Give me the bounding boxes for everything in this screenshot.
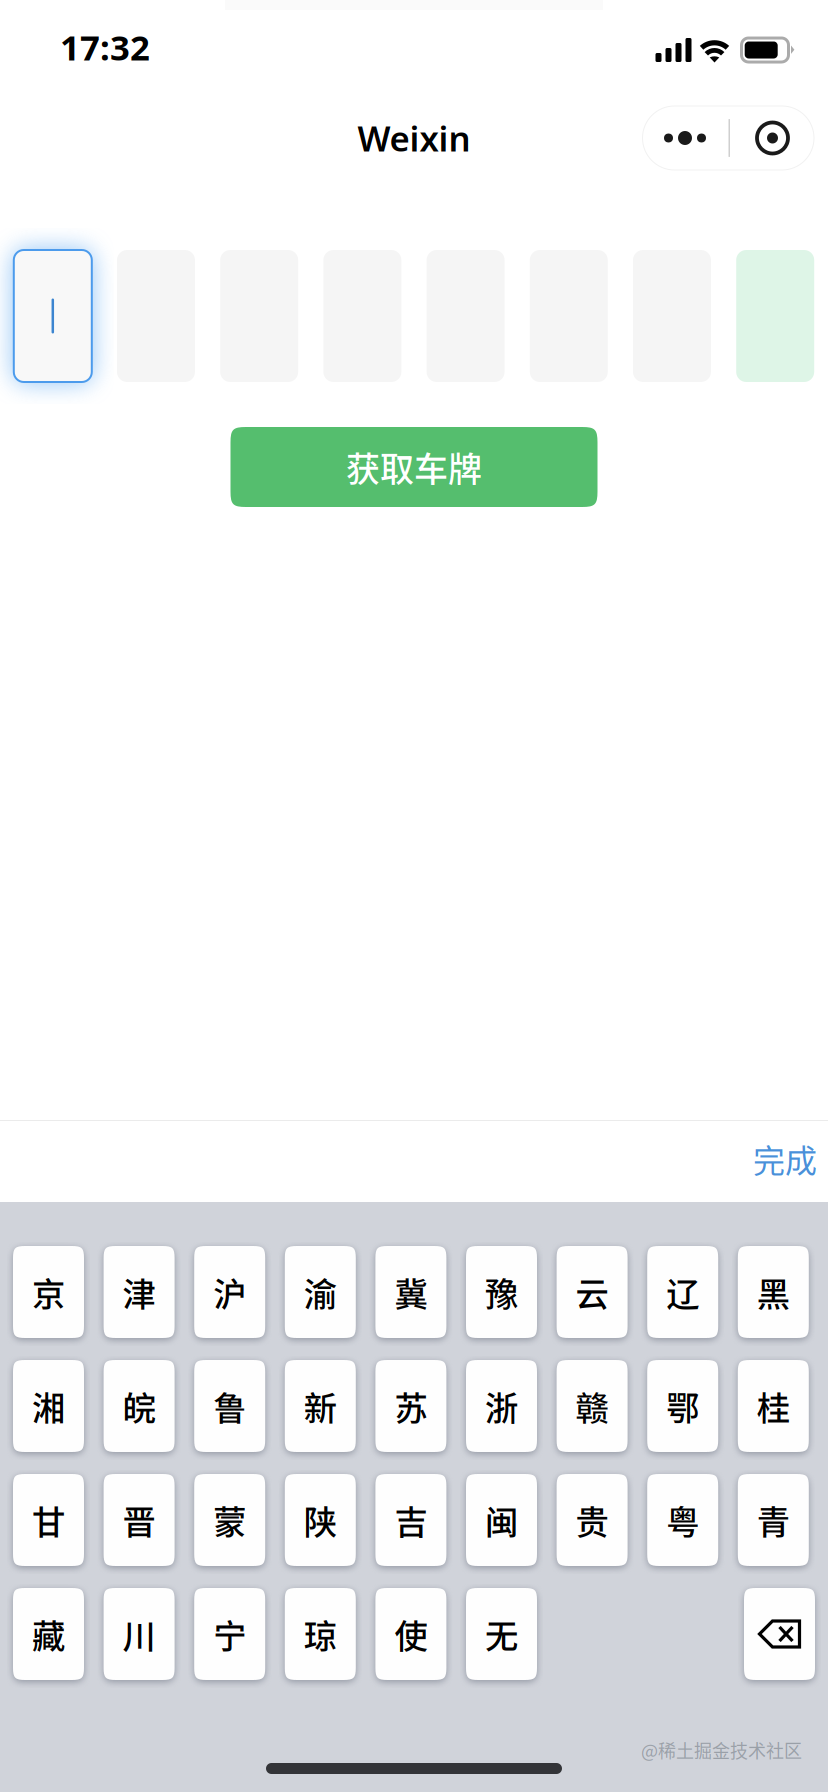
staticText: @稀土掘金技术社区 — [641, 1737, 802, 1763]
staticText: 辽 — [666, 1268, 699, 1316]
staticText: 青 — [757, 1496, 790, 1544]
button[interactable]: 使 — [375, 1588, 446, 1680]
button[interactable]: 吉 — [375, 1474, 446, 1566]
button[interactable]: Close — [730, 107, 815, 169]
staticText: 贵 — [576, 1496, 609, 1544]
staticText: 云 — [576, 1268, 609, 1316]
staticText: Weixin — [357, 115, 470, 161]
staticText: 蒙 — [213, 1496, 246, 1544]
button[interactable]: 湘 — [13, 1360, 84, 1452]
staticText: 豫 — [485, 1268, 518, 1316]
staticText: 湘 — [32, 1382, 65, 1430]
button[interactable]: 蒙 — [194, 1474, 265, 1566]
staticText: 冀 — [394, 1268, 427, 1316]
staticText: 17:32 — [60, 24, 150, 70]
button[interactable]: 渝 — [285, 1246, 356, 1338]
staticText: 鄂 — [666, 1382, 699, 1430]
button[interactable]: 苏 — [375, 1360, 446, 1452]
staticText: 鲁 — [213, 1382, 246, 1430]
button[interactable]: 沪 — [194, 1246, 265, 1338]
button[interactable]: Delete — [744, 1588, 815, 1680]
staticText: 吉 — [394, 1496, 427, 1544]
staticText: 陕 — [304, 1496, 337, 1544]
staticText: 完成 — [753, 1135, 817, 1182]
button[interactable]: 琼 — [285, 1588, 356, 1680]
button[interactable]: 鲁 — [194, 1360, 265, 1452]
button[interactable]: 甘 — [13, 1474, 84, 1566]
button[interactable]: 豫 — [466, 1246, 537, 1338]
staticText: 津 — [123, 1268, 156, 1316]
button[interactable]: More — [641, 107, 728, 169]
button[interactable]: 鄂 — [647, 1360, 718, 1452]
button[interactable]: 新 — [285, 1360, 356, 1452]
staticText: 浙 — [485, 1382, 518, 1430]
staticText: 桂 — [757, 1382, 790, 1430]
button[interactable]: 陕 — [285, 1474, 356, 1566]
button[interactable]: 获取车牌 — [230, 427, 597, 507]
button[interactable]: Plate slot 1 — [14, 250, 92, 382]
button[interactable]: 冀 — [375, 1246, 446, 1338]
button[interactable]: 津 — [104, 1246, 175, 1338]
staticText: 渝 — [304, 1268, 337, 1316]
button[interactable]: 粤 — [647, 1474, 718, 1566]
button[interactable]: 青 — [738, 1474, 809, 1566]
staticText: 沪 — [213, 1268, 246, 1316]
staticText: 京 — [32, 1268, 65, 1316]
button[interactable]: 闽 — [466, 1474, 537, 1566]
button[interactable]: 宁 — [194, 1588, 265, 1680]
staticText: 无 — [485, 1610, 518, 1658]
staticText: 晋 — [123, 1496, 156, 1544]
button[interactable]: 浙 — [466, 1360, 537, 1452]
staticText: 新 — [304, 1382, 337, 1430]
button[interactable]: 赣 — [557, 1360, 628, 1452]
button[interactable]: 桂 — [738, 1360, 809, 1452]
button[interactable]: 辽 — [647, 1246, 718, 1338]
staticText: 赣 — [576, 1382, 609, 1430]
staticText: 闽 — [485, 1496, 518, 1544]
button[interactable]: 川 — [104, 1588, 175, 1680]
button[interactable]: 完成 — [742, 1124, 828, 1199]
staticText: 黑 — [757, 1268, 790, 1316]
button[interactable]: 藏 — [13, 1588, 84, 1680]
staticText: 使 — [394, 1610, 427, 1658]
button[interactable]: 云 — [557, 1246, 628, 1338]
button[interactable]: 京 — [13, 1246, 84, 1338]
button[interactable]: 贵 — [557, 1474, 628, 1566]
button[interactable]: 黑 — [738, 1246, 809, 1338]
staticText: 宁 — [213, 1610, 246, 1658]
staticText: 藏 — [32, 1610, 65, 1658]
staticText: 甘 — [32, 1496, 65, 1544]
staticText: 川 — [123, 1610, 156, 1658]
staticText: 苏 — [394, 1382, 427, 1430]
button[interactable]: 皖 — [104, 1360, 175, 1452]
button[interactable]: 晋 — [104, 1474, 175, 1566]
staticText: 皖 — [123, 1382, 156, 1430]
button[interactable]: 无 — [466, 1588, 537, 1680]
staticText: 粤 — [666, 1496, 699, 1544]
staticText: 琼 — [304, 1610, 337, 1658]
staticText: 获取车牌 — [346, 442, 482, 492]
